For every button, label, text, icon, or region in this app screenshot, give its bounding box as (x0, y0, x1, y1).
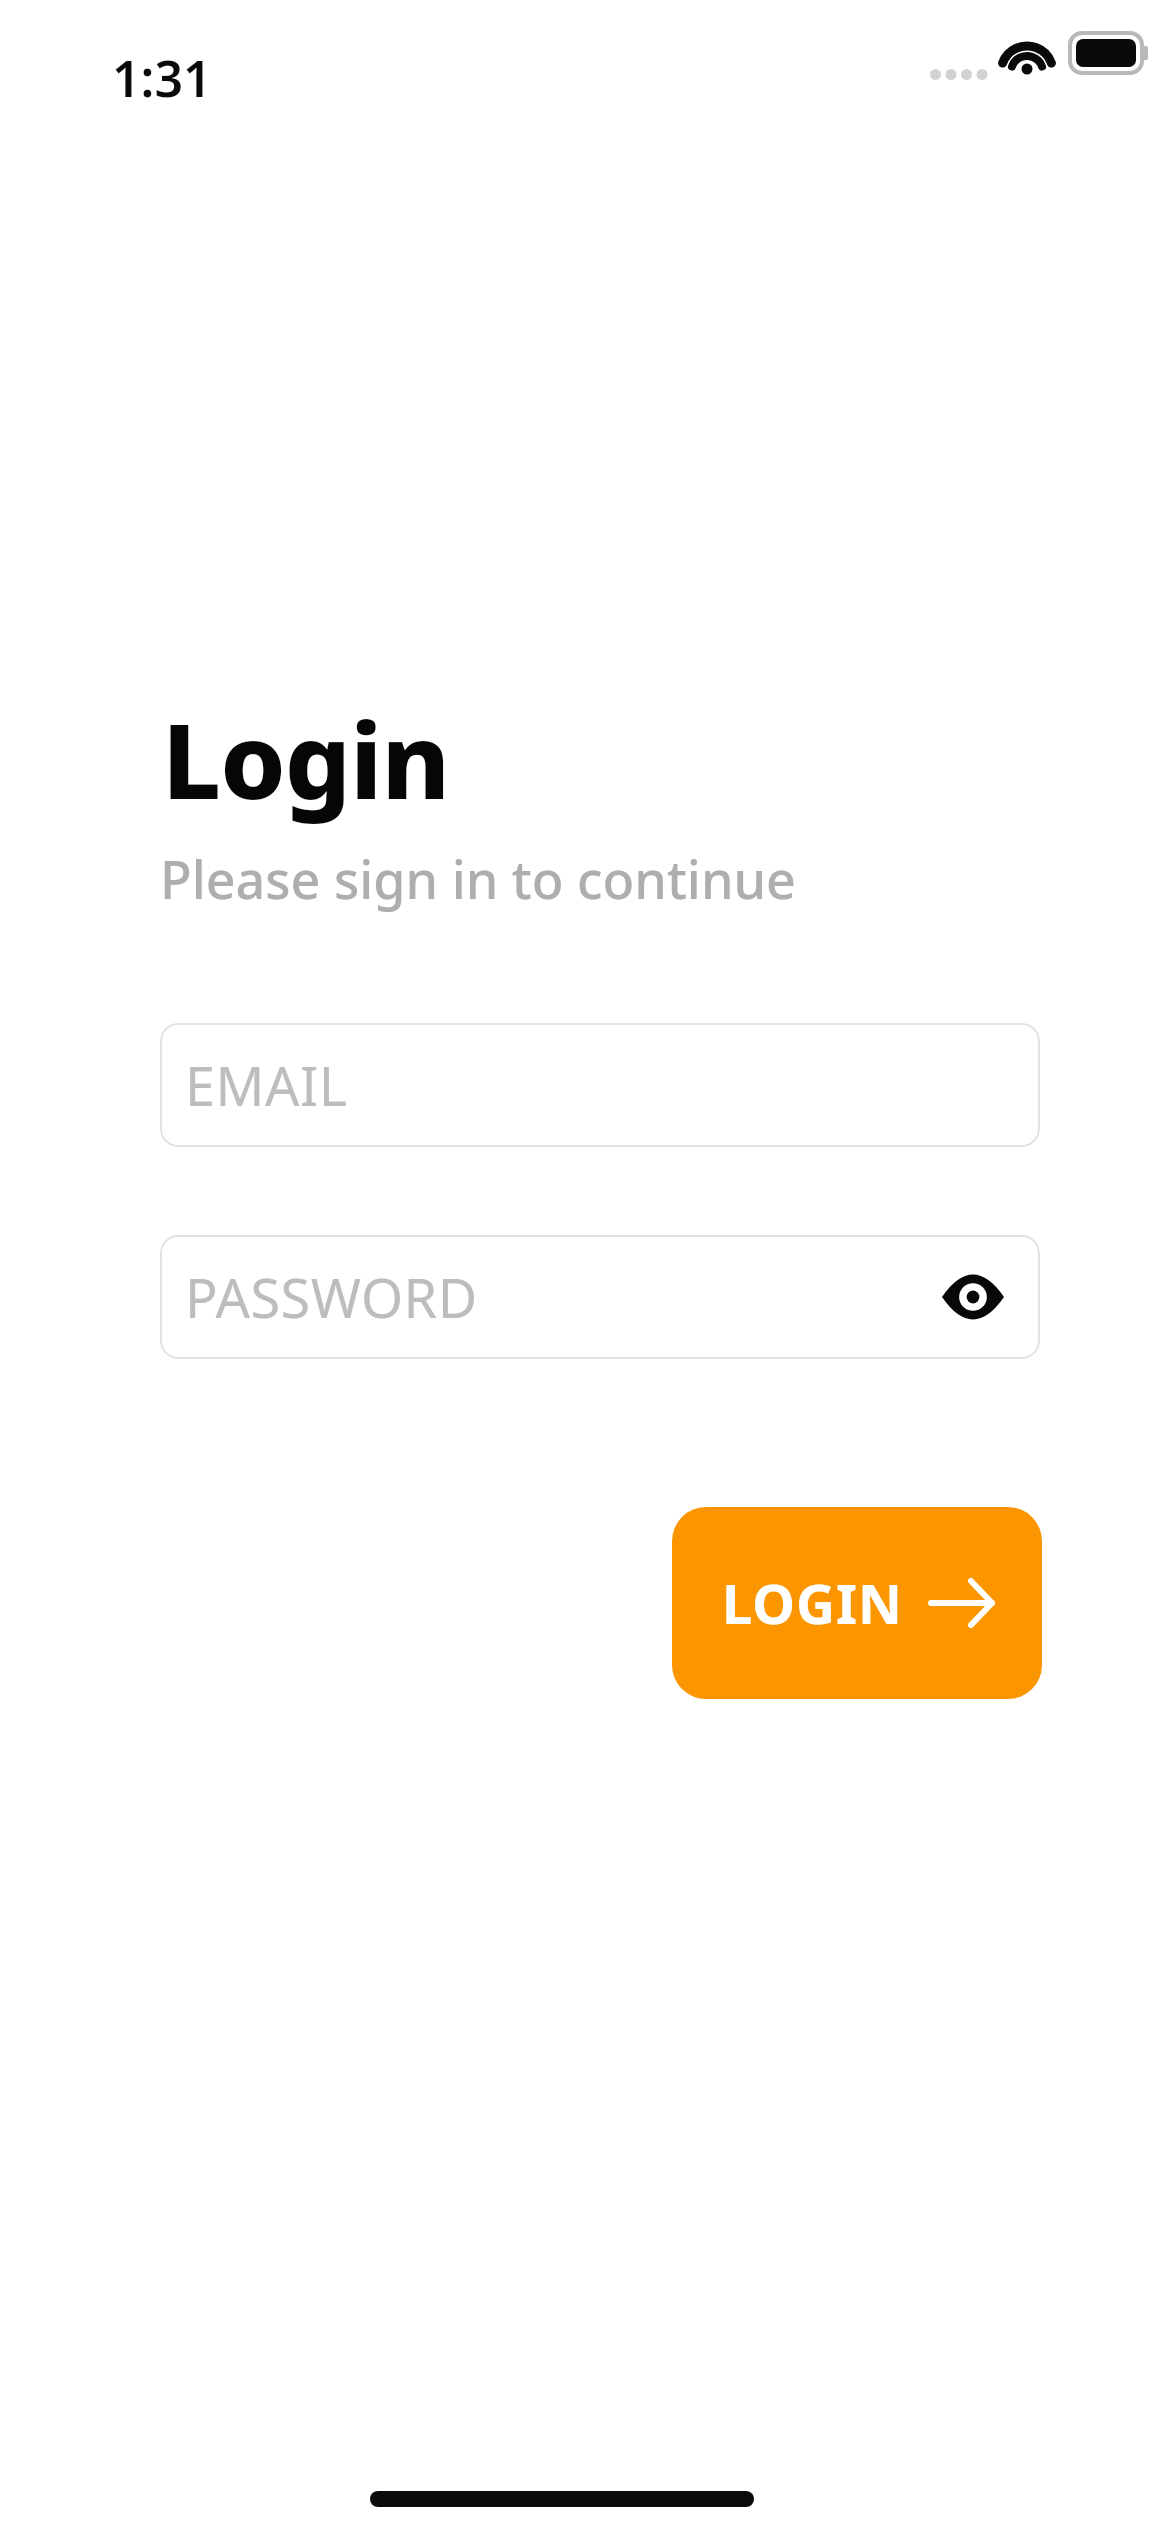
staticText: Login (162, 688, 449, 830)
staticText: 1:31 (112, 44, 212, 112)
button[interactable]: PASSWORD (160, 1235, 1040, 1359)
staticText: EMAIL (185, 1048, 348, 1122)
button[interactable]: EMAIL (160, 1023, 1040, 1147)
staticText: PASSWORD (185, 1260, 478, 1334)
staticText: Please sign in to continue (160, 843, 796, 914)
button[interactable]: Show password (940, 1273, 1006, 1321)
button[interactable]: LOGIN (672, 1507, 1042, 1699)
staticText: LOGIN (722, 1566, 903, 1640)
